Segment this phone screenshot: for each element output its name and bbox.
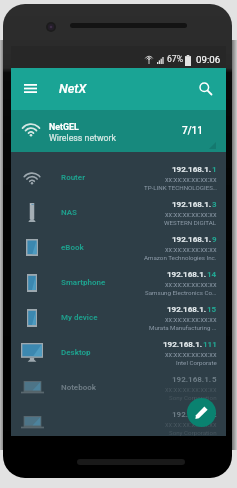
staticText: My device	[61, 313, 98, 322]
staticText: xx:xx:xx:xx:xx:xx	[165, 245, 217, 253]
staticText: WESTERN DIGITAL	[164, 219, 217, 226]
button[interactable]: Router	[11, 160, 226, 195]
staticText: 5	[212, 375, 217, 384]
staticText: 192.168.1.	[172, 200, 212, 209]
staticText: xx:xx:xx:xx:xx:xx	[165, 175, 217, 183]
staticText: NetGEL	[49, 122, 79, 132]
staticText: 15	[207, 305, 217, 314]
button[interactable]: Smartphone	[11, 265, 226, 300]
staticText: Desktop	[61, 348, 91, 357]
staticText: Sony Corporation	[169, 394, 217, 401]
staticText: Amazon Technologies Inc.	[144, 254, 217, 261]
button[interactable]: NAS	[11, 195, 226, 230]
staticText: 14	[207, 270, 217, 279]
button[interactable]: NetGEL	[11, 110, 226, 152]
staticText: NAS	[61, 208, 78, 217]
staticText: NetX	[59, 81, 87, 96]
staticText: 192.168.1.	[163, 340, 203, 349]
staticText: Intel Corporate	[176, 359, 217, 366]
staticText: eBook	[61, 243, 84, 252]
staticText: 3	[212, 200, 217, 209]
button[interactable]: Desktop	[11, 335, 226, 370]
button[interactable]: Edit	[187, 398, 216, 427]
staticText: 7/11	[182, 125, 203, 137]
staticText: 192.168.1.	[172, 235, 212, 244]
button[interactable]: 192.168.1.	[11, 405, 226, 440]
staticText: Smartphone	[61, 278, 106, 287]
staticText: xx:xx:xx:xx:xx:xx	[165, 280, 217, 288]
button[interactable]: eBook	[11, 230, 226, 265]
staticText: 192.168.1.	[172, 410, 212, 419]
staticText: 192.168.1.	[167, 270, 207, 279]
staticText: Sony Corporation	[169, 429, 217, 436]
button[interactable]: Search	[191, 74, 219, 102]
staticText: xx:xx:xx:xx:xx:xx	[165, 210, 217, 218]
staticText: Router	[61, 173, 86, 182]
staticText: xx:xx:xx:xx:xx:xx	[165, 420, 217, 428]
staticText: xx:xx:xx:xx:xx:xx	[165, 350, 217, 358]
staticText: 67%	[167, 54, 183, 64]
staticText: 192.168.1.	[172, 165, 212, 174]
staticText: Samsung Electronics Co…	[145, 289, 217, 296]
staticText: Murata Manufacturing …	[149, 324, 217, 331]
button[interactable]: Open navigation menu	[16, 74, 44, 102]
staticText: 192.168.1.	[167, 305, 207, 314]
staticText: 9	[212, 235, 217, 244]
button[interactable]: My device	[11, 300, 226, 335]
staticText: 111	[203, 340, 217, 349]
staticText: 1	[212, 165, 217, 174]
staticText: 192.168.1.	[172, 375, 212, 384]
staticText: 09:06	[196, 54, 221, 65]
staticText: 2	[212, 410, 217, 419]
staticText: Wireless network	[49, 133, 117, 143]
staticText: xx:xx:xx:xx:xx:xx	[165, 315, 217, 323]
button[interactable]: Notebook	[11, 370, 226, 405]
staticText: xx:xx:xx:xx:xx:xx	[165, 385, 217, 393]
staticText: Notebook	[61, 383, 96, 392]
staticText: TP-LINK TECHNOLOGIES…	[144, 184, 217, 191]
